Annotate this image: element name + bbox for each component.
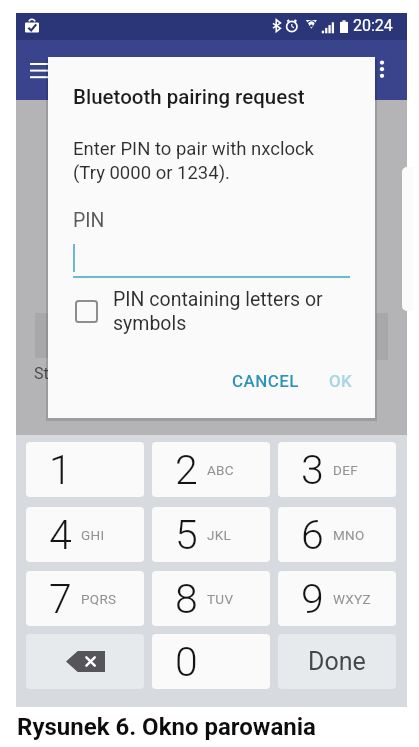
staticText: 6 [301, 511, 324, 559]
staticText: Bluetooth pairing request [73, 85, 305, 109]
staticText: 8 [175, 575, 198, 623]
button[interactable]: 9 [278, 571, 396, 626]
staticText: TUV [207, 591, 234, 607]
staticText: Rysunek 6. Okno parowania [17, 713, 316, 741]
button[interactable]: 7 [26, 571, 144, 626]
staticText: 0 [175, 638, 198, 686]
staticText: 9 [301, 575, 324, 623]
button[interactable]: 1 [26, 442, 144, 497]
staticText: 20:24 [353, 16, 393, 35]
button[interactable]: PIN containing letters or symbols [68, 293, 360, 349]
staticText: OK [329, 371, 353, 391]
button[interactable]: Done [278, 634, 396, 689]
button[interactable]: 8 [152, 571, 270, 626]
staticText: 1 [49, 446, 72, 494]
button[interactable]: 0 [152, 634, 270, 689]
staticText: GHI [81, 527, 105, 543]
staticText: 4 [49, 511, 72, 559]
button[interactable]: 3 [278, 442, 396, 497]
button[interactable]: 6 [278, 507, 396, 562]
staticText: 7 [49, 575, 72, 623]
staticText: 2 [175, 446, 198, 494]
button[interactable]: Navigation menu [18, 48, 62, 92]
staticText: MNO [333, 527, 365, 543]
button[interactable]: 4 [26, 507, 144, 562]
button[interactable]: Backspace [26, 634, 144, 689]
staticText: St [34, 364, 49, 383]
button[interactable]: OK [319, 364, 363, 398]
staticText: PQRS [81, 591, 117, 607]
staticText: ABC [207, 462, 234, 478]
staticText: PIN containing letters or symbols [113, 288, 323, 334]
button[interactable]: More options [360, 48, 404, 92]
staticText: 5 [175, 511, 198, 559]
button[interactable]: 2 [152, 442, 270, 497]
staticText: PIN [73, 209, 105, 232]
staticText: WXYZ [333, 591, 371, 607]
staticText: DEF [333, 462, 358, 478]
staticText: JKL [207, 527, 232, 543]
staticText: 3 [301, 446, 324, 494]
staticText: CANCEL [232, 371, 299, 391]
button[interactable]: 5 [152, 507, 270, 562]
staticText: Done [308, 647, 366, 676]
staticText: Enter PIN to pair with nxclock (Try 0000… [73, 138, 314, 183]
button[interactable]: CANCEL [222, 364, 309, 398]
